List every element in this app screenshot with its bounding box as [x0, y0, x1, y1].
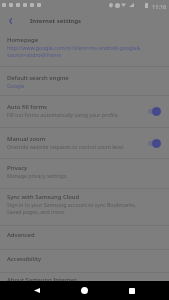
staticText: About Samsung Internet	[7, 276, 77, 284]
button[interactable]	[0, 29, 169, 66]
button[interactable]	[0, 95, 169, 127]
button[interactable]: Navigate up	[2, 13, 18, 29]
staticText: Auto fill forms	[7, 103, 47, 111]
staticText: Accessibility	[7, 255, 42, 263]
staticText: source=android-home	[7, 51, 62, 58]
staticText: Internet settings	[30, 17, 82, 25]
button[interactable]	[0, 127, 169, 158]
staticText: Privacy	[7, 164, 28, 172]
staticText: Saved pages, and more.	[7, 208, 66, 215]
button[interactable]: Recent apps	[120, 281, 143, 300]
staticText: Sync with Samsung Cloud	[7, 193, 80, 201]
staticText: Google	[7, 82, 25, 89]
staticText: 11:16	[152, 3, 167, 11]
button[interactable]	[0, 188, 169, 225]
button[interactable]	[0, 158, 169, 187]
staticText: Manage privacy settings.	[7, 172, 68, 179]
button[interactable]	[0, 225, 169, 249]
staticText: Homepage	[7, 36, 39, 44]
staticText: Advanced	[7, 231, 35, 239]
staticText: Fill out forms automatically using your …	[7, 111, 119, 118]
staticText: Manual zoom	[7, 135, 46, 143]
button[interactable]	[0, 66, 169, 96]
staticText: http://www.google.com/m?client=ms-androi…	[7, 44, 141, 51]
staticText: Sign in to your Samsung account to sync …	[7, 201, 136, 208]
staticText: Default search engine	[7, 74, 69, 82]
button[interactable]: Back	[25, 281, 48, 300]
button[interactable]	[0, 249, 169, 272]
button[interactable]: Home	[72, 281, 96, 300]
staticText: Override website requests to control zoo…	[7, 143, 125, 150]
button[interactable]	[0, 272, 169, 281]
